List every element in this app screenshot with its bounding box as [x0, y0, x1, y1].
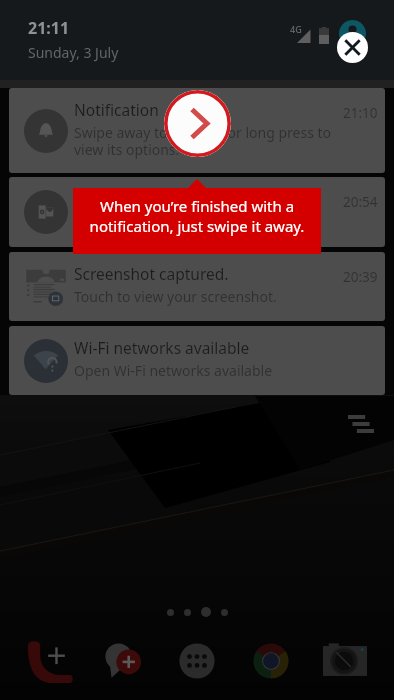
button[interactable]: Notification	[9, 88, 385, 173]
staticText: Wi-Fi networks available	[74, 337, 250, 358]
staticText: Swipe away to dismiss, or long press to …	[74, 123, 346, 159]
button[interactable]: Screenshot captured.	[9, 252, 385, 321]
staticText: Screenshot captured.	[74, 263, 229, 284]
button[interactable]: Close tutorial	[337, 32, 368, 63]
button[interactable]: Chrome	[246, 636, 296, 686]
staticText: Notification	[74, 99, 159, 120]
staticText: When you’re finished with a notification…	[73, 196, 321, 236]
staticText: 4G	[290, 23, 302, 35]
staticText: 20:39	[343, 268, 378, 286]
staticText: 21:10	[343, 104, 378, 122]
button[interactable]: Messages	[98, 636, 148, 686]
staticText: Open Wi-Fi networks available	[74, 361, 273, 380]
staticText: 20:54	[343, 193, 378, 211]
button[interactable]: Phone	[24, 636, 74, 686]
button[interactable]: 20:54	[9, 177, 385, 247]
button[interactable]: Next step	[164, 90, 231, 157]
button[interactable]: Wi-Fi networks available	[9, 326, 385, 395]
button[interactable]: All apps	[172, 636, 222, 686]
button[interactable]: Camera	[320, 636, 370, 686]
staticText: Touch to view your screenshot.	[74, 287, 277, 306]
staticText: Sunday, 3 July	[28, 43, 119, 62]
staticText: 21:11	[28, 17, 70, 39]
